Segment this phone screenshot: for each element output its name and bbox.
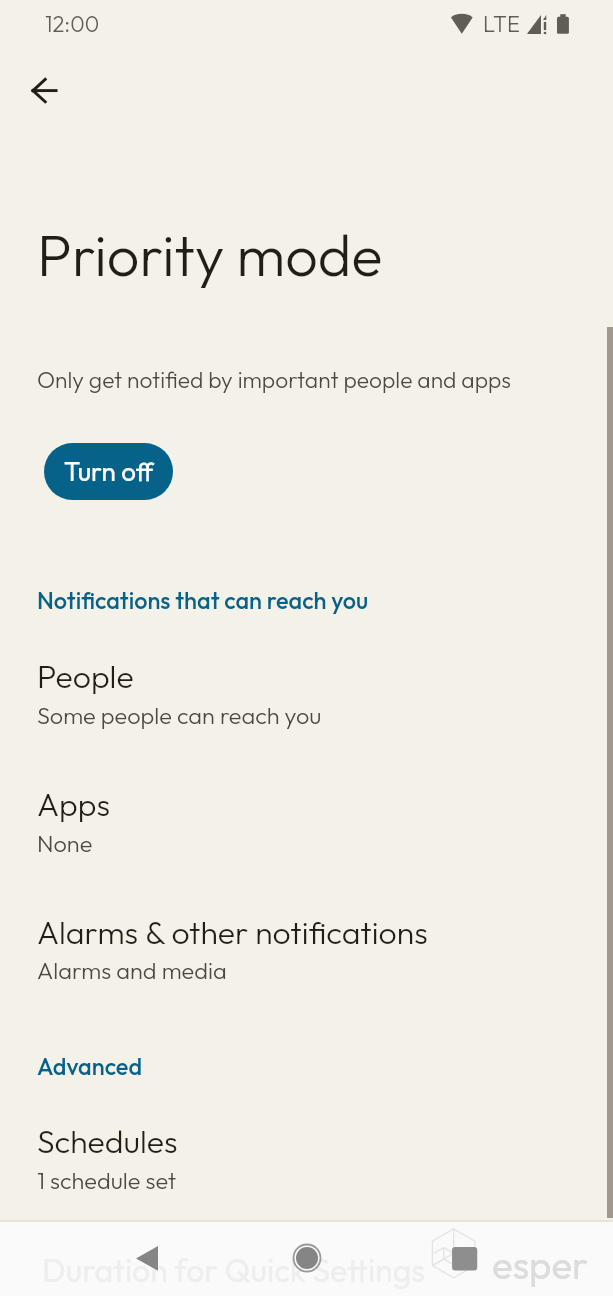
staticText: Alarms and media xyxy=(37,955,227,985)
staticText: Turn off xyxy=(64,455,154,488)
staticText: Apps xyxy=(37,784,111,824)
button[interactable]: Navigate up xyxy=(14,68,60,114)
button[interactable]: Alarms & other notifications xyxy=(0,898,613,983)
staticText: 12:00 xyxy=(45,10,100,38)
staticText: Schedules xyxy=(37,1121,178,1161)
button[interactable]: Turn off xyxy=(44,443,173,500)
button[interactable]: Back xyxy=(114,1224,166,1276)
staticText: None xyxy=(37,828,93,858)
button[interactable]: Apps xyxy=(0,770,613,856)
staticText: People xyxy=(37,656,134,696)
staticText: Priority mode xyxy=(37,219,383,291)
staticText: LTE xyxy=(483,10,520,38)
staticText: Alarms & other notifications xyxy=(37,912,428,952)
staticText: Advanced xyxy=(37,1051,143,1081)
staticText: esper xyxy=(492,1240,589,1289)
staticText: Only get notified by important people an… xyxy=(37,365,511,394)
button[interactable]: Home xyxy=(281,1236,333,1288)
staticText: Notifications that can reach you xyxy=(37,585,369,615)
staticText: Some people can reach you xyxy=(37,700,322,730)
button[interactable]: Schedules xyxy=(0,1107,613,1193)
staticText: 1 schedule set xyxy=(37,1165,177,1195)
button[interactable]: People xyxy=(0,642,613,728)
staticText: Duration for Quick Settings xyxy=(42,1250,425,1290)
